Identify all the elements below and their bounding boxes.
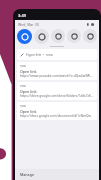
button[interactable]: App icon [17,49,97,60]
staticText: now [20,64,26,68]
other: App icon [20,53,24,57]
button[interactable]: now [17,82,97,100]
button[interactable]: Auto-rotate [83,29,97,43]
button[interactable]: Manage [18,171,36,178]
button[interactable]: Do not disturb [51,29,65,43]
staticText: https://drive.google.com/drive/folders/1… [20,94,94,98]
button[interactable]: Flashlight [67,29,81,43]
staticText: Manage [20,172,34,177]
button[interactable]: now [17,62,97,80]
staticText: Hyperlink • now [26,52,53,57]
staticText: Open link [20,69,37,74]
button[interactable]: now [17,102,97,120]
staticText: now [20,104,26,108]
button[interactable]: Bluetooth [34,29,49,44]
button[interactable]: Wi-Fi [17,29,32,44]
staticText: now [20,84,26,88]
staticText: https://docs.google.com/document/d/1vNmQ… [20,114,92,118]
staticText: Wed, Mar 30 [18,22,39,27]
staticText: Open link [20,109,37,114]
staticText: https://www.youtube.com/watch?v=dQw4w9Wg… [20,74,94,78]
staticText: 3:49 [18,13,26,18]
staticText: Open link [20,89,37,94]
